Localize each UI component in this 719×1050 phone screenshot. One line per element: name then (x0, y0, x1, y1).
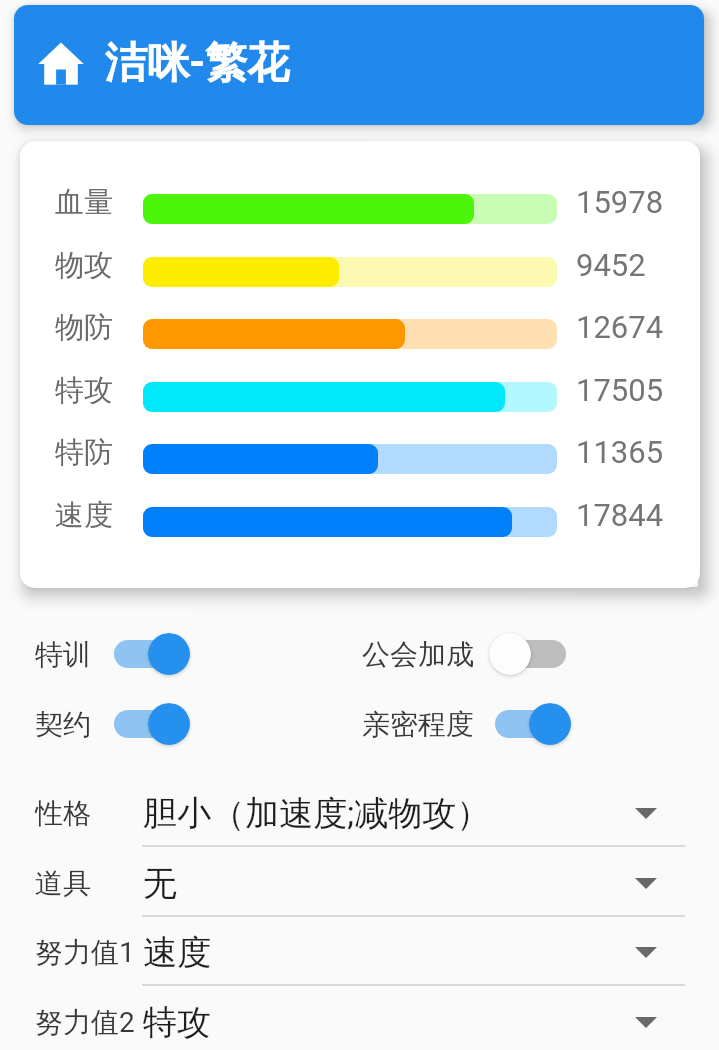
staticText: 11365 (576, 434, 664, 470)
staticText: 契约 (35, 707, 91, 742)
staticText: 9452 (576, 247, 646, 283)
staticText: 血量 (55, 184, 113, 221)
staticText: 无 (143, 862, 177, 905)
button[interactable]: 性格 (0, 778, 719, 848)
staticText: 物防 (55, 309, 113, 346)
staticText: 特攻 (143, 1001, 211, 1044)
staticText: 物攻 (55, 247, 113, 284)
staticText: 12674 (576, 309, 664, 345)
staticText: 17505 (576, 372, 664, 408)
staticText: 道具 (35, 866, 91, 901)
staticText: 17844 (576, 497, 664, 533)
staticText: 公会加成 (362, 637, 474, 672)
staticText: 努力值2 (35, 1005, 135, 1040)
staticText: 亲密程度 (362, 707, 474, 742)
button[interactable]: 洁咪-繁花 (14, 5, 704, 125)
staticText: 特训 (35, 637, 91, 672)
staticText: 速度 (143, 931, 211, 974)
button[interactable]: 努力值1 (0, 917, 719, 987)
staticText: 特攻 (55, 372, 113, 409)
staticText: 胆小（加速度;减物攻） (143, 792, 491, 835)
button[interactable] (114, 710, 190, 738)
staticText: 洁咪-繁花 (105, 37, 290, 90)
staticText: 15978 (576, 184, 664, 220)
staticText: 性格 (35, 796, 91, 831)
button[interactable] (490, 640, 566, 668)
button[interactable] (114, 640, 190, 668)
staticText: 特防 (55, 434, 113, 471)
button[interactable] (495, 710, 571, 738)
button[interactable]: 道具 (0, 848, 719, 918)
staticText: 努力值1 (35, 935, 135, 970)
staticText: 速度 (55, 497, 113, 534)
button[interactable]: 努力值2 (0, 987, 719, 1050)
